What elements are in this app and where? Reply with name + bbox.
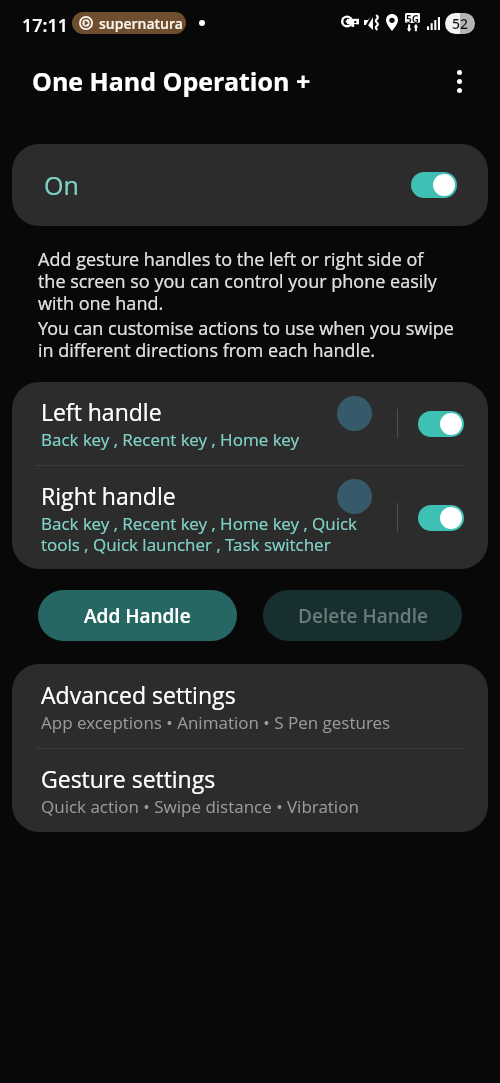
button[interactable]: Toggle [418,505,464,531]
staticText: You can customise actions to use when yo… [38,316,455,363]
staticText: 17:11 [22,13,69,38]
button[interactable]: Handle colour [337,396,372,431]
staticText: 5G [406,12,419,26]
staticText: Add Handle [84,603,191,629]
staticText: App exceptions • Animation • S Pen gestu… [41,711,391,734]
button[interactable]: Delete Handle [263,590,462,641]
button[interactable]: Right handle [12,466,488,569]
button[interactable]: Media player [79,12,183,34]
button[interactable]: More options [437,59,481,103]
button[interactable]: Gesture settings [12,749,488,832]
staticText: Gesture settings [41,763,216,794]
staticText: Add gesture handles to the left or right… [38,247,455,316]
button[interactable]: Toggle [411,172,457,198]
staticText: On [44,168,79,202]
button[interactable]: Toggle [418,411,464,437]
staticText: Quick action • Swipe distance • Vibratio… [41,795,359,818]
button[interactable]: Left handle [12,382,488,465]
staticText: supernatura [99,14,183,33]
button[interactable]: Handle colour [337,479,372,514]
button[interactable]: Advanced settings [12,664,488,748]
staticText: Advanced settings [41,679,236,710]
staticText: Back key , Recent key , Home key [41,428,300,451]
button[interactable]: On [12,144,488,226]
button[interactable]: Add Handle [38,590,237,641]
staticText: Right handle [41,480,176,511]
staticText: 52 [452,14,468,33]
staticText: Delete Handle [298,603,428,629]
staticText: Back key , Recent key , Home key , Quick… [41,512,361,556]
staticText: One Hand Operation + [32,64,311,98]
staticText: Left handle [41,396,162,427]
